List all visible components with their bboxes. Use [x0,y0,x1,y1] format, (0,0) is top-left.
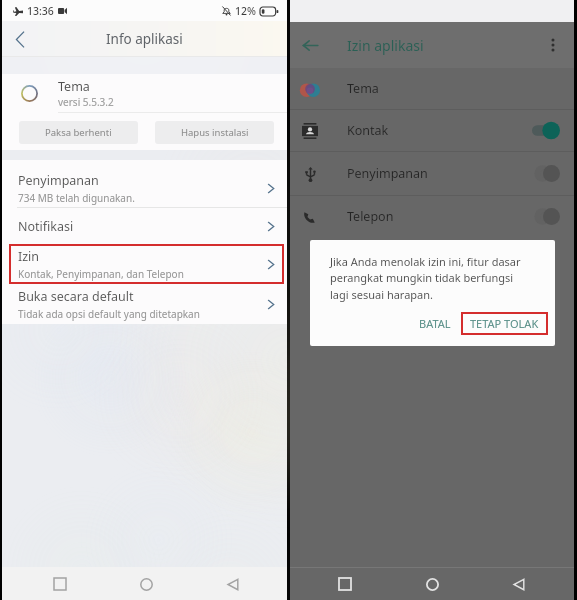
staticText: Kontak, Penyimpanan, dan Telepon [18,267,184,281]
staticText: Tema [347,80,560,97]
button[interactable]: Penyimpanan [2,170,287,207]
staticText: versi 5.5.3.2 [58,95,114,109]
button[interactable]: Home [416,568,448,600]
button[interactable]: Penyimpanan [290,152,574,195]
button[interactable]: Turn on [532,165,560,182]
staticText: Penyimpanan [18,172,99,189]
staticText: Penyimpanan [347,165,532,182]
staticText: Izin aplikasi [347,36,424,55]
button[interactable]: Back [2,21,38,57]
staticText: Tidak ada opsi default yang ditetapkan [18,307,200,321]
button[interactable]: More options [538,30,568,60]
button[interactable]: Buka secara default [2,284,287,324]
button[interactable]: Hapus instalasi [155,121,274,144]
staticText: TETAP TOLAK [470,316,539,331]
staticText: 12% [235,4,256,18]
button[interactable]: Recents [329,568,361,600]
button[interactable]: Back [294,29,327,62]
staticText: Jika Anda menolak izin ini, fitur dasar … [330,254,521,303]
staticText: Izin [18,248,40,265]
button[interactable]: Home [130,568,162,600]
button[interactable]: Notifikasi [2,208,287,244]
staticText: Tema [58,78,90,95]
button[interactable]: BATAL [412,311,458,336]
button[interactable]: Paksa berhenti [19,121,138,144]
button[interactable]: Izin [2,244,287,284]
staticText: Hapus instalasi [181,126,249,139]
button[interactable]: Kontak [290,110,574,151]
staticText: Paksa berhenti [45,126,112,139]
button[interactable]: Turn on [532,208,560,225]
button[interactable]: Turn off [532,122,560,139]
button[interactable]: Tema [2,74,287,112]
button[interactable]: Back [503,568,535,600]
staticText: Buka secara default [18,288,134,305]
staticText: Notifikasi [18,218,74,235]
staticText: 13:36 [27,4,54,18]
staticText: Info aplikasi [106,30,183,48]
button[interactable]: Recents [44,568,76,600]
button[interactable]: Telepon [290,196,574,237]
staticText: Telepon [347,208,532,225]
staticText: 734 MB telah digunakan. [18,191,135,205]
button[interactable]: Tema [290,68,574,109]
staticText: BATAL [419,316,451,331]
staticText: Kontak [347,122,532,139]
button[interactable]: TETAP TOLAK [461,312,548,335]
button[interactable]: Back [217,568,249,600]
